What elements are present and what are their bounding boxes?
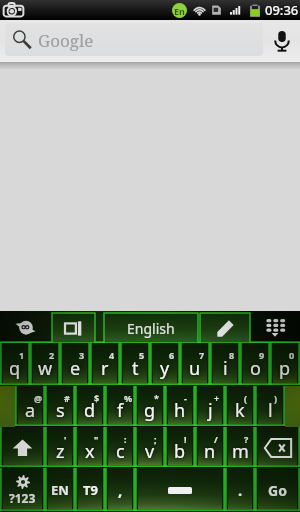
staticText: 6 [169,349,175,361]
button[interactable]: % [105,386,135,427]
button[interactable]: 9 [240,343,270,386]
staticText: 3 [79,349,85,361]
staticText: l [268,398,273,423]
staticText: g [144,398,156,423]
button[interactable]: Space [135,468,225,512]
button[interactable]: Input method [52,313,95,343]
staticText: Google [38,29,94,52]
staticText: ? [244,433,249,445]
button[interactable]: Symbols [0,468,45,512]
button[interactable]: ? [225,427,255,468]
staticText: b [174,439,186,464]
staticText: + [214,392,220,404]
button[interactable]: ! [165,427,195,468]
button[interactable]: ' [45,427,75,468]
button[interactable]: Edit [200,313,250,343]
staticText: " [94,433,99,445]
button[interactable]: @ [15,386,45,427]
staticText: x [85,439,95,464]
staticText: c [116,439,125,464]
staticText: 7 [199,349,205,361]
button[interactable]: : [105,427,135,468]
button[interactable]: ( [225,386,255,427]
button[interactable]: Hide keyboard [250,311,300,343]
staticText: 8 [229,349,235,361]
staticText: # [64,392,70,404]
button[interactable]: $ [75,386,105,427]
staticText: y [160,356,170,381]
button[interactable]: 3 [60,343,90,386]
button[interactable]: # [45,386,75,427]
button[interactable]: English language [104,313,198,343]
button[interactable]: 4 [90,343,120,386]
staticText: En [174,5,185,17]
staticText: 0 [289,349,295,361]
staticText: 4 [109,349,115,361]
staticText: ?123 [9,490,36,506]
staticText: 1 [19,349,25,361]
staticText: n [204,439,216,464]
button[interactable]: GO Keyboard menu [0,311,52,343]
staticText: q [9,356,21,381]
staticText: m [232,439,249,464]
button[interactable]: 5 [120,343,150,386]
button[interactable]: Shift [0,427,45,468]
staticText: ' [64,433,67,445]
staticText: 5 [139,349,145,361]
button[interactable]: Comma [105,468,135,512]
button[interactable]: + [195,386,225,427]
staticText: p [279,356,291,381]
staticText: ! [184,433,187,445]
button[interactable]: - [165,386,195,427]
staticText: a [25,398,36,423]
button[interactable]: T9 [75,468,105,512]
button[interactable]: ; [135,427,165,468]
staticText: ( [244,392,248,404]
staticText: 9 [259,349,265,361]
staticText: d [84,398,96,423]
button[interactable]: " [75,427,105,468]
staticText: v [145,439,155,464]
staticText: h [174,398,186,423]
staticText: e [70,356,81,381]
staticText: English [127,319,175,338]
staticText: ; [154,433,157,445]
button[interactable]: ) [255,386,285,427]
button[interactable]: * [135,386,165,427]
button[interactable]: 6 [150,343,180,386]
staticText: , [118,480,123,500]
staticText: $ [94,392,100,404]
staticText: f [117,398,124,423]
staticText: z [56,439,65,464]
staticText: / [214,433,218,445]
button[interactable] [5,23,263,56]
staticText: ) [274,392,278,404]
staticText: . [238,480,243,500]
staticText: 09:36 [265,1,299,19]
staticText: s [56,398,65,423]
button[interactable]: Voice search [265,24,299,58]
staticText: r [101,356,109,381]
button[interactable]: Go [255,468,300,512]
button[interactable]: 7 [180,343,210,386]
button[interactable]: 2 [30,343,60,386]
staticText: t [132,356,139,381]
button[interactable]: EN [45,468,75,512]
staticText: o [250,356,261,381]
button[interactable]: Period [225,468,255,512]
staticText: 2 [49,349,55,361]
button[interactable]: 0 [270,343,300,386]
button[interactable]: 8 [210,343,240,386]
staticText: * [154,392,159,404]
staticText: EN [51,481,69,499]
staticText: % [124,392,133,404]
staticText: @ [34,392,43,404]
staticText: : [124,433,127,445]
staticText: j [208,398,213,423]
button[interactable]: 1 [0,343,30,386]
button[interactable]: Backspace [255,427,300,468]
staticText: Go [268,481,287,500]
staticText: w [38,356,53,381]
staticText: i [223,356,228,381]
button[interactable]: / [195,427,225,468]
